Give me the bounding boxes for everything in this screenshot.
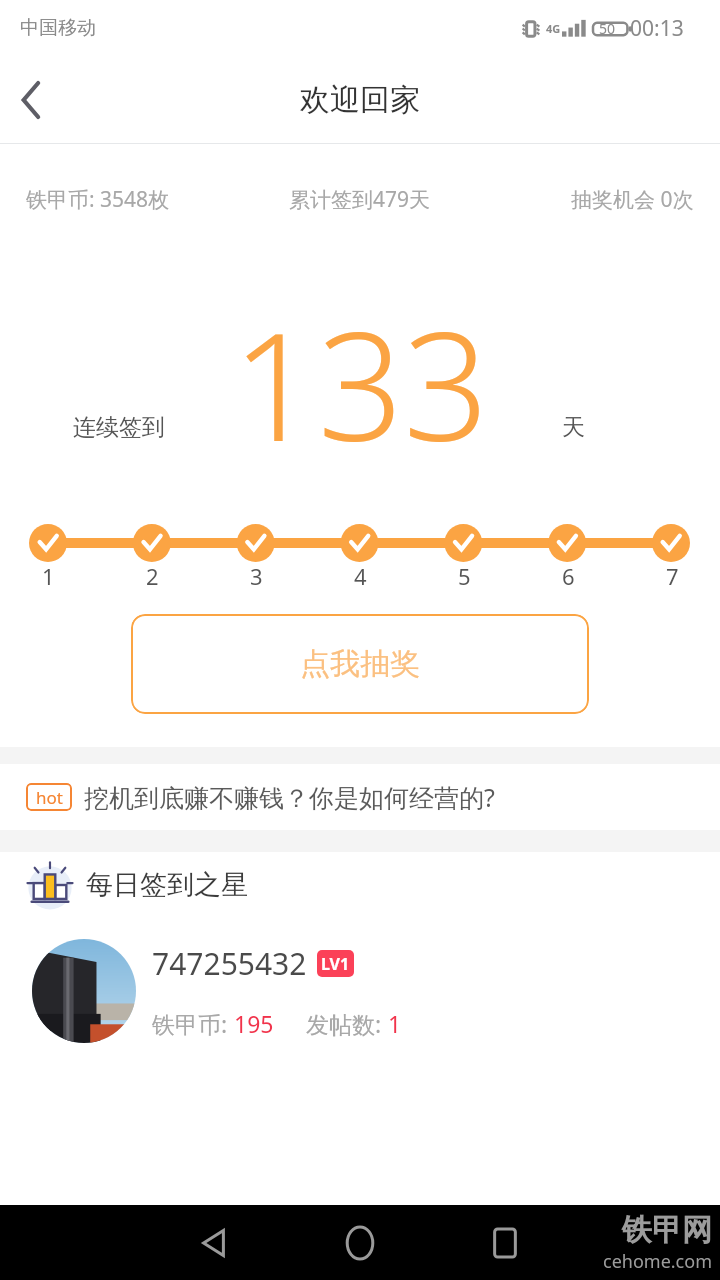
button[interactable]: Recents <box>470 1208 540 1278</box>
staticText: LV1 <box>321 953 350 975</box>
staticText: 50 <box>599 19 616 38</box>
staticText: 发帖数: <box>306 1008 388 1039</box>
staticText: 1 <box>42 561 55 591</box>
staticText: 铁甲网 <box>622 1211 712 1249</box>
staticText: 4G <box>546 21 561 36</box>
staticText: 00:13 <box>630 14 684 43</box>
staticText: 133 <box>232 281 489 485</box>
staticText: 4 <box>354 561 367 591</box>
staticText: 挖机到底赚不赚钱？你是如何经营的? <box>84 780 495 814</box>
staticText: 累计签到479天 <box>289 185 431 214</box>
staticText: hot <box>36 786 63 809</box>
button[interactable]: Home <box>325 1208 395 1278</box>
staticText: 天 <box>562 413 585 442</box>
staticText: 2 <box>146 561 159 591</box>
staticText: cehome.com <box>603 1249 712 1274</box>
staticText: 铁甲币: 3548枚 <box>26 185 170 214</box>
button[interactable]: Back <box>0 68 64 132</box>
staticText: 747255432 <box>152 943 307 984</box>
button[interactable]: hot <box>0 764 720 830</box>
staticText: 铁甲币: <box>152 1008 234 1039</box>
button[interactable]: 747255432 <box>0 918 720 1063</box>
staticText: 1 <box>388 1008 402 1039</box>
staticText: 连续签到 <box>73 413 165 442</box>
staticText: 每日签到之星 <box>86 868 248 902</box>
staticText: 195 <box>234 1008 274 1039</box>
staticText: 点我抽奖 <box>300 645 420 683</box>
staticText: 抽奖机会 0次 <box>571 185 694 214</box>
staticText: 欢迎回家 <box>300 81 420 119</box>
button[interactable]: Back <box>180 1208 250 1278</box>
button[interactable]: 点我抽奖 <box>131 614 589 714</box>
staticText: 7 <box>666 561 679 591</box>
staticText: 6 <box>562 561 575 591</box>
staticText: 3 <box>250 561 263 591</box>
staticText: 中国移动 <box>20 16 96 40</box>
staticText: 5 <box>458 561 471 591</box>
